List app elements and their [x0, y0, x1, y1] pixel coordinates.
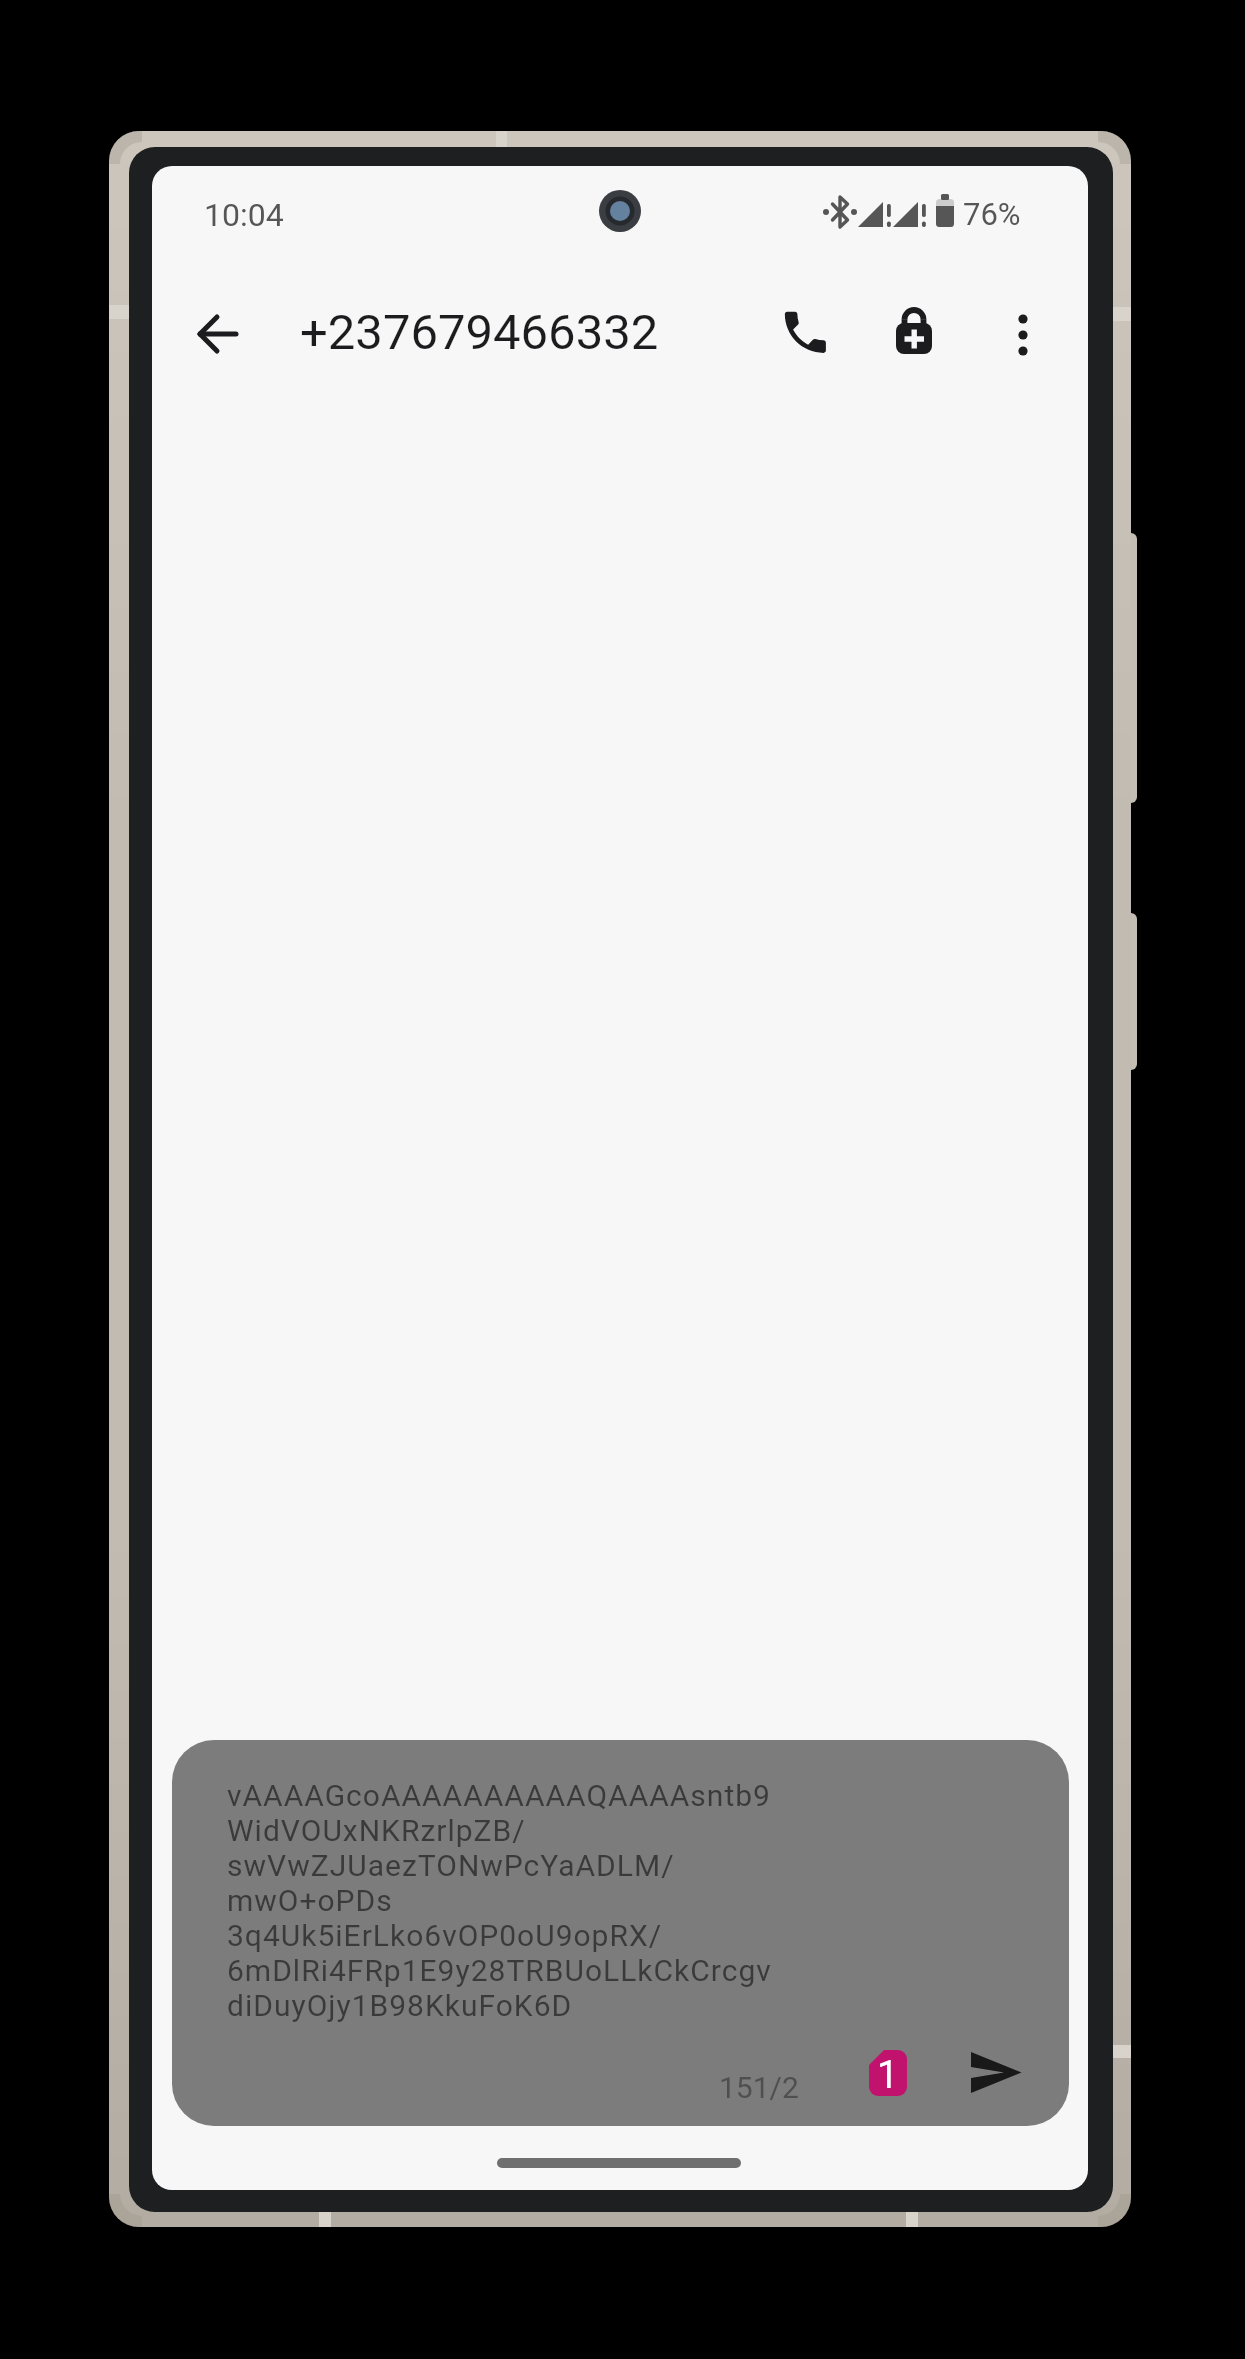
staticText: 1: [877, 2053, 899, 2098]
staticText: +237679466332: [300, 304, 659, 361]
staticText: 151/2: [719, 2070, 799, 2105]
button[interactable]: [987, 299, 1059, 371]
staticText: 10:04: [204, 196, 284, 234]
button[interactable]: 1: [869, 2050, 907, 2096]
button[interactable]: vAAAAGcoAAAAAAAAAAQAAAAsntb9 WidVOUxNKRz…: [172, 1740, 1069, 2126]
button[interactable]: [959, 2038, 1035, 2108]
staticText: vAAAAGcoAAAAAAAAAAQAAAAsntb9 WidVOUxNKRz…: [227, 1778, 772, 2023]
button[interactable]: [769, 297, 841, 369]
staticText: 76%: [963, 196, 1021, 232]
button[interactable]: [182, 298, 254, 370]
button[interactable]: [878, 296, 950, 368]
